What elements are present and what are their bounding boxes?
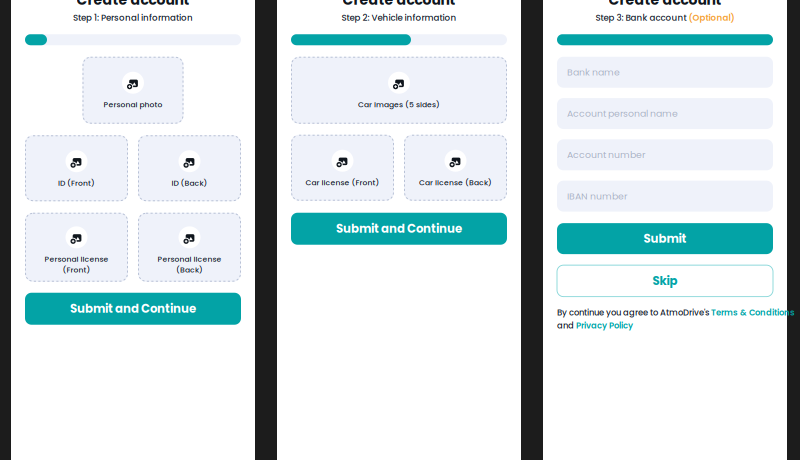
staticText: (Optional) xyxy=(689,12,735,24)
button[interactable]: Submit and Continue xyxy=(291,213,507,245)
staticText: ID (Back) xyxy=(171,178,207,188)
staticText: Personal license xyxy=(157,254,221,264)
staticText: Submit and Continue xyxy=(336,220,462,237)
button[interactable]: Submit xyxy=(557,223,773,254)
button[interactable]: Skip xyxy=(557,265,773,297)
staticText: Car images (5 sides) xyxy=(358,99,440,110)
button[interactable]: Car images (5 sides) xyxy=(291,57,507,124)
staticText: Account number xyxy=(567,148,645,161)
staticText: and xyxy=(557,320,576,331)
staticText: Create account xyxy=(608,0,721,10)
staticText: By continue you agree to AtmoDrive's xyxy=(557,307,711,318)
button[interactable]: Personal license xyxy=(138,213,241,282)
staticText: Create account xyxy=(76,0,189,10)
staticText: Bank name xyxy=(567,66,620,79)
staticText: Personal license xyxy=(44,254,108,264)
staticText: ID (Front) xyxy=(58,178,95,188)
button[interactable]: Personal photo xyxy=(82,57,183,124)
staticText: Create account xyxy=(342,0,455,10)
staticText: Car license (Back) xyxy=(419,177,492,188)
button[interactable]: Car license (Front) xyxy=(291,135,394,201)
staticText: (Back) xyxy=(176,264,203,275)
staticText: Privacy Policy xyxy=(576,320,633,331)
button[interactable]: Terms & Conditions xyxy=(711,307,795,318)
staticText: Car license (Front) xyxy=(305,177,379,188)
staticText: Personal photo xyxy=(103,99,162,110)
staticText: IBAN number xyxy=(567,190,627,203)
staticText: Submit and Continue xyxy=(70,300,196,317)
button[interactable]: ID (Back) xyxy=(138,135,241,201)
staticText: Step 1: Personal information xyxy=(73,12,193,24)
staticText: Terms & Conditions xyxy=(711,307,795,318)
button[interactable]: Privacy Policy xyxy=(576,320,633,331)
button[interactable]: Submit and Continue xyxy=(25,293,241,325)
staticText: Step 2: Vehicle information xyxy=(341,12,456,24)
staticText: (Front) xyxy=(62,264,90,275)
button[interactable]: Personal license xyxy=(25,213,128,282)
staticText: Account personal name xyxy=(567,107,678,120)
button[interactable]: Car license (Back) xyxy=(404,135,507,201)
staticText: Skip xyxy=(652,273,677,289)
staticText: Submit xyxy=(643,230,686,247)
staticText: Step 3: Bank account xyxy=(595,12,686,24)
button[interactable]: ID (Front) xyxy=(25,135,128,201)
